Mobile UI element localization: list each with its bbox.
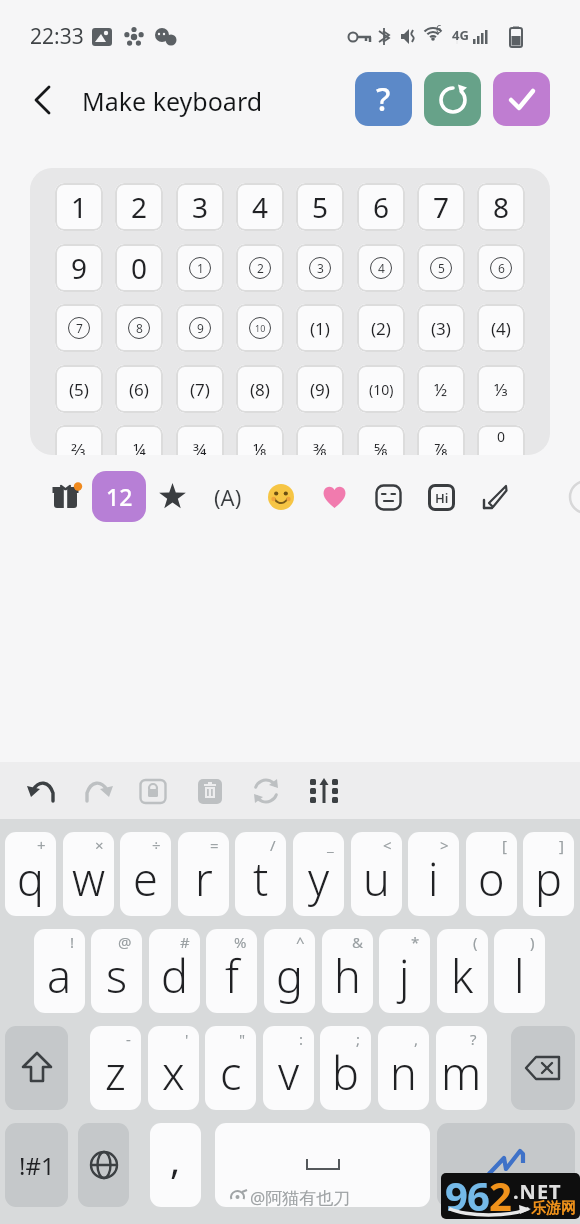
button[interactable]: 3 (296, 244, 344, 292)
button[interactable] (268, 484, 294, 510)
button[interactable]: ÷ (120, 832, 171, 916)
button[interactable] (52, 482, 84, 512)
button[interactable]: Hi (428, 484, 455, 511)
button[interactable]: 8 (115, 304, 163, 352)
button[interactable]: & (322, 929, 373, 1013)
button[interactable]: ' (148, 1026, 199, 1110)
button[interactable]: (3) (417, 304, 465, 352)
button[interactable]: # (149, 929, 200, 1013)
staticText: 9 (197, 320, 204, 336)
button[interactable]: ⅛ (236, 425, 284, 455)
button[interactable] (78, 1123, 129, 1207)
button[interactable]: ½ (417, 365, 465, 413)
button[interactable] (158, 483, 187, 512)
staticText: 1 (71, 188, 88, 226)
button[interactable]: > (408, 832, 459, 916)
button[interactable]: (7) (176, 365, 224, 413)
button[interactable]: × (63, 832, 114, 916)
button[interactable]: _ (293, 832, 344, 916)
button[interactable]: ? (436, 1026, 487, 1110)
button[interactable]: 0 (115, 244, 163, 292)
button[interactable]: 1 (55, 183, 103, 231)
button[interactable]: 7 (417, 183, 465, 231)
button[interactable]: ⅞ (417, 425, 465, 455)
button[interactable]: , (378, 1026, 429, 1110)
button[interactable] (437, 1123, 575, 1207)
button[interactable]: 0 (477, 425, 525, 455)
button[interactable]: [ (466, 832, 517, 916)
button[interactable]: + (5, 832, 56, 916)
button[interactable]: 8 (477, 183, 525, 231)
button[interactable]: (8) (236, 365, 284, 413)
button[interactable]: < (351, 832, 402, 916)
button[interactable]: % (206, 929, 257, 1013)
staticText: / (270, 835, 276, 855)
staticText: k (451, 945, 474, 1006)
button[interactable]: ⅓ (477, 365, 525, 413)
button[interactable]: ¾ (176, 425, 224, 455)
staticText: 3 (192, 188, 209, 226)
button[interactable] (511, 1026, 575, 1110)
button[interactable]: ⅜ (296, 425, 344, 455)
button[interactable]: * (379, 929, 430, 1013)
button[interactable]: 12 (92, 471, 146, 522)
button[interactable]: (10) (357, 365, 405, 413)
button[interactable]: ⅝ (357, 425, 405, 455)
button[interactable]: 9 (55, 244, 103, 292)
button[interactable] (215, 1123, 430, 1207)
button[interactable]: 9 (176, 304, 224, 352)
button[interactable] (83, 777, 113, 805)
button[interactable] (34, 86, 54, 114)
button[interactable] (424, 72, 481, 126)
button[interactable] (481, 483, 509, 511)
button[interactable] (375, 484, 402, 511)
button[interactable]: ] (523, 832, 574, 916)
button[interactable]: 2 (236, 244, 284, 292)
button[interactable]: ^ (264, 929, 315, 1013)
button[interactable] (196, 777, 224, 805)
button[interactable]: ! (34, 929, 85, 1013)
button[interactable]: = (178, 832, 229, 916)
button[interactable]: 2 (115, 183, 163, 231)
button[interactable] (27, 777, 57, 805)
button[interactable]: (6) (115, 365, 163, 413)
button[interactable]: 5 (417, 244, 465, 292)
button[interactable] (310, 777, 340, 805)
button[interactable]: 3 (176, 183, 224, 231)
staticText: ⅔ (71, 438, 87, 455)
button[interactable]: (A) (204, 482, 252, 512)
staticText: a (47, 945, 72, 1006)
button[interactable]: (9) (296, 365, 344, 413)
button[interactable]: ¼ (115, 425, 163, 455)
button[interactable] (322, 485, 347, 510)
button[interactable]: 7 (55, 304, 103, 352)
button[interactable]: !#1 (5, 1123, 68, 1207)
button[interactable]: / (235, 832, 286, 916)
button[interactable]: (4) (477, 304, 525, 352)
button[interactable]: 4 (236, 183, 284, 231)
button[interactable]: : (263, 1026, 314, 1110)
button[interactable]: 6 (357, 183, 405, 231)
button[interactable]: (2) (357, 304, 405, 352)
button[interactable]: 4 (357, 244, 405, 292)
button[interactable]: ? (355, 72, 412, 126)
button[interactable]: ⅔ (55, 425, 103, 455)
button[interactable]: ( (437, 929, 488, 1013)
button[interactable]: ) (494, 929, 545, 1013)
button[interactable]: , (150, 1123, 201, 1207)
button[interactable]: ; (320, 1026, 371, 1110)
button[interactable]: - (90, 1026, 141, 1110)
button[interactable] (139, 777, 167, 805)
button[interactable]: (5) (55, 365, 103, 413)
button[interactable]: 6 (477, 244, 525, 292)
button[interactable]: 5 (296, 183, 344, 231)
button[interactable] (493, 72, 550, 126)
button[interactable] (5, 1026, 68, 1110)
button[interactable]: 1 (176, 244, 224, 292)
button[interactable]: 10 (236, 304, 284, 352)
button[interactable] (252, 777, 280, 805)
button[interactable]: (1) (296, 304, 344, 352)
button[interactable]: " (205, 1026, 256, 1110)
button[interactable]: @ (91, 929, 142, 1013)
staticText: (2) (371, 317, 391, 340)
